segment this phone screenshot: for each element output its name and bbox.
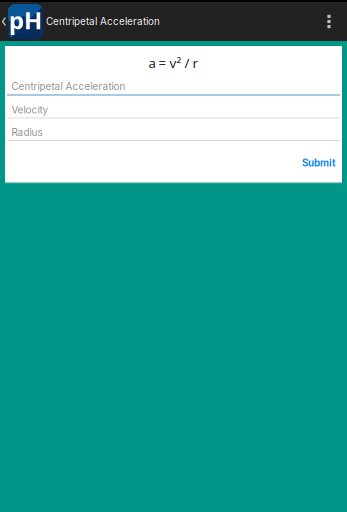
button[interactable]: Velocity (7, 96, 340, 118)
staticText: Centripetal Acceleration (11, 81, 125, 92)
staticText: a = v² / r (148, 54, 198, 72)
staticText: Radius (11, 127, 42, 138)
button[interactable]: Radius (7, 118, 340, 141)
button[interactable]: Centripetal Acceleration (7, 73, 340, 96)
staticText: Centripetal Acceleration (46, 15, 160, 27)
button[interactable]: Submit (301, 150, 340, 176)
staticText: pH (9, 4, 42, 36)
staticText: Submit (302, 157, 336, 169)
staticText: pH (4, 8, 37, 40)
button[interactable]: More options (315, 2, 343, 41)
staticText: Velocity (11, 104, 48, 116)
button[interactable]: Back (0, 2, 43, 41)
